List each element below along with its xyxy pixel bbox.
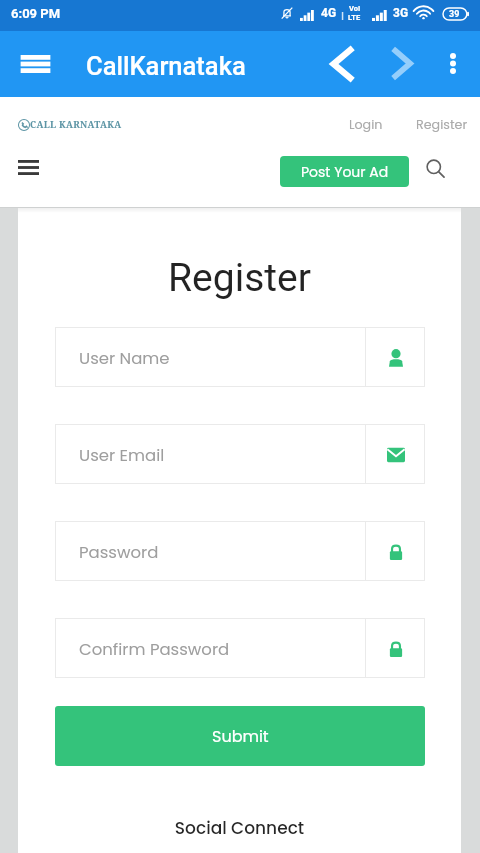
button[interactable]: Post Your Ad xyxy=(280,156,409,187)
staticText: CALL KARNATAKA xyxy=(30,118,122,131)
button[interactable]: Back xyxy=(319,42,363,86)
staticText: VoI xyxy=(349,4,361,13)
staticText: Password xyxy=(79,541,159,564)
staticText: User Name xyxy=(79,347,170,370)
button[interactable]: Register xyxy=(408,111,476,139)
button[interactable]: Password xyxy=(55,521,425,581)
staticText: 3G xyxy=(393,6,409,20)
staticText: Register xyxy=(416,116,468,134)
button[interactable]: User Name xyxy=(55,327,425,387)
button[interactable]: More options xyxy=(431,41,475,85)
staticText: CallKarnataka xyxy=(86,51,246,81)
staticText: LTE xyxy=(348,13,361,22)
staticText: Login xyxy=(349,116,383,134)
staticText: 4G xyxy=(321,6,337,20)
button[interactable]: Menu xyxy=(13,42,57,86)
button[interactable]: Submit xyxy=(55,706,425,766)
button[interactable]: Search xyxy=(415,148,455,188)
button[interactable]: Confirm Password xyxy=(55,618,425,678)
staticText: 6:09 PM xyxy=(11,6,61,21)
staticText: Register xyxy=(18,255,461,301)
button[interactable]: User Email xyxy=(55,424,425,484)
button[interactable]: Login xyxy=(341,111,391,139)
staticText: Confirm Password xyxy=(79,638,230,661)
staticText: Post Your Ad xyxy=(301,162,389,182)
button[interactable]: Navigation menu xyxy=(8,147,48,187)
staticText: Social Connect xyxy=(18,816,461,840)
staticText: User Email xyxy=(79,444,165,467)
staticText: 39 xyxy=(449,9,460,20)
button[interactable]: Forward xyxy=(380,41,424,85)
staticText: Submit xyxy=(212,725,269,747)
